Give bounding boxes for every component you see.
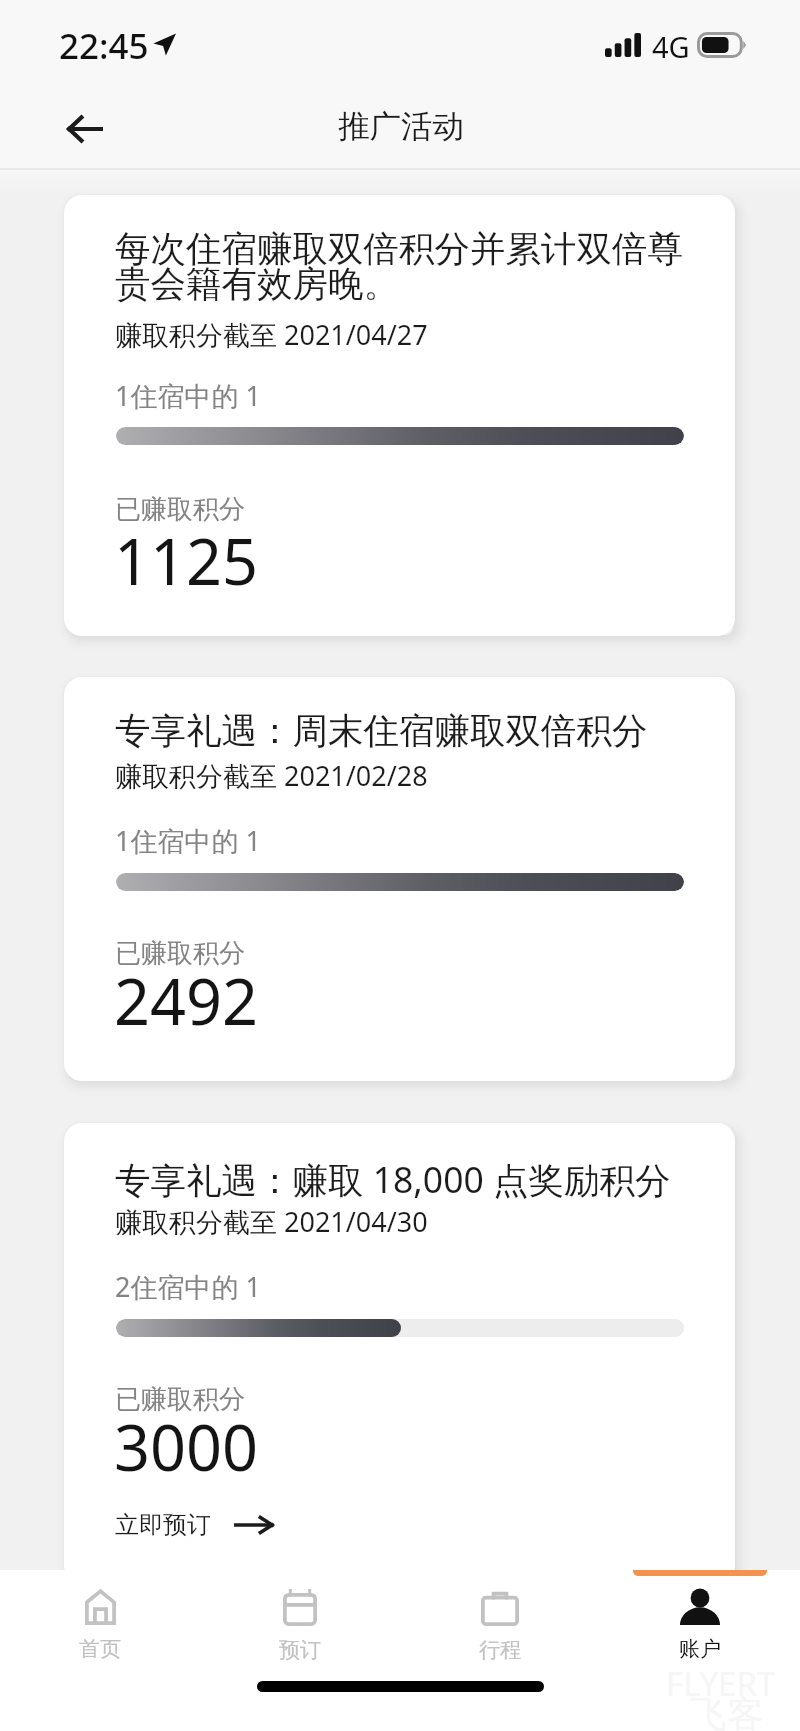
staticText: 1住宿中的 1 bbox=[115, 822, 261, 859]
staticText: 赚取积分截至 2021/02/28 bbox=[115, 757, 428, 794]
staticText: 飞客 bbox=[690, 1691, 764, 1731]
button[interactable]: 专享礼遇：赚取 18,000 点奖励积分 bbox=[64, 1123, 735, 1570]
staticText: 22:45 bbox=[59, 22, 149, 70]
staticText: 预订 bbox=[279, 1637, 321, 1663]
staticText: 专享礼遇：赚取 18,000 点奖励积分 bbox=[115, 1155, 687, 1203]
staticText: 立即预订 bbox=[115, 1510, 211, 1540]
button[interactable]: 每次住宿赚取双倍积分并累计双倍尊贵会籍有效房晚。 bbox=[64, 195, 735, 636]
staticText: 账户 bbox=[679, 1636, 721, 1662]
button[interactable]: Back bbox=[52, 96, 118, 162]
button[interactable]: 行程 bbox=[400, 1576, 600, 1670]
button[interactable]: 账户 bbox=[600, 1576, 800, 1670]
staticText: 3000 bbox=[114, 1404, 259, 1490]
staticText: 2住宿中的 1 bbox=[115, 1268, 261, 1305]
staticText: 首页 bbox=[79, 1636, 121, 1662]
staticText: FLYERT bbox=[666, 1661, 776, 1706]
staticText: 推广活动 bbox=[338, 107, 464, 147]
staticText: 1125 bbox=[114, 518, 259, 604]
staticText: 行程 bbox=[479, 1637, 521, 1663]
staticText: 已赚取积分 bbox=[115, 937, 245, 970]
staticText: 4G bbox=[652, 27, 690, 66]
button[interactable]: 预订 bbox=[200, 1576, 400, 1670]
button[interactable]: 立即预订 bbox=[115, 1510, 274, 1540]
staticText: 已赚取积分 bbox=[115, 1383, 245, 1416]
staticText: 2492 bbox=[114, 958, 259, 1044]
staticText: 赚取积分截至 2021/04/27 bbox=[115, 316, 428, 353]
staticText: 已赚取积分 bbox=[115, 493, 245, 526]
button[interactable]: 专享礼遇：周末住宿赚取双倍积分 bbox=[64, 677, 735, 1081]
staticText: 赚取积分截至 2021/04/30 bbox=[115, 1203, 428, 1240]
staticText: 1住宿中的 1 bbox=[115, 377, 261, 414]
staticText: 专享礼遇：周末住宿赚取双倍积分 bbox=[115, 709, 687, 754]
staticText: 每次住宿赚取双倍积分并累计双倍尊贵会籍有效房晚。 bbox=[115, 227, 687, 307]
button[interactable]: 首页 bbox=[0, 1576, 200, 1670]
